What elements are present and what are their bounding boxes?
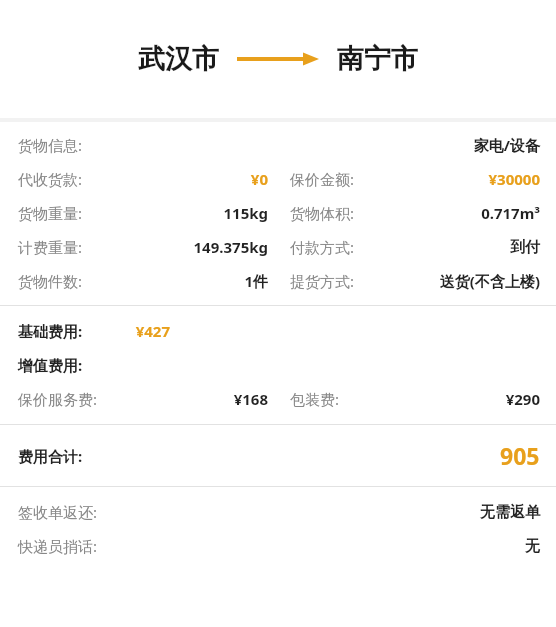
button[interactable]: 货物重量: [0,196,556,230]
staticText: 增值费用: [18,355,83,375]
button[interactable]: 武汉市 [0,0,556,118]
staticText: 送货(不含上楼) [439,271,540,291]
staticText: 905 [500,440,540,471]
staticText: 代收货款: [18,169,83,189]
button[interactable]: 基础费用: [0,314,556,348]
staticText: 到付 [510,238,540,257]
staticText: 基础费用: [18,321,83,341]
staticText: 货物信息: [18,135,83,155]
button[interactable]: 货物信息: [0,128,556,162]
staticText: 保价服务费: [18,389,98,409]
staticText: 无需返单 [480,503,540,522]
button[interactable]: 费用合计: [0,425,556,486]
staticText: 保价金额: [290,169,355,189]
staticText: 武汉市 [138,42,219,76]
staticText: ¥168 [233,389,268,409]
staticText: 货物重量: [18,203,83,223]
staticText: 快递员捎话: [18,536,98,556]
button[interactable]: 增值费用: [0,348,556,382]
other: 到 [237,49,319,69]
staticText: 1件 [244,271,268,291]
staticText: 提货方式: [290,271,355,291]
staticText: 计费重量: [18,237,83,257]
staticText: 南宁市 [337,42,418,76]
staticText: 无 [525,537,540,556]
staticText: 费用合计: [18,446,83,466]
button[interactable]: 货物件数: [0,264,556,298]
staticText: ¥0 [250,169,268,189]
staticText: ¥290 [505,389,540,409]
staticText: 115kg [223,203,268,223]
staticText: 149.375kg [193,237,268,257]
staticText: 货物体积: [290,203,355,223]
button[interactable]: 代收货款: [0,162,556,196]
staticText: ¥427 [135,321,170,341]
staticText: 签收单返还: [18,502,98,522]
button[interactable]: 快递员捎话: [0,529,556,563]
staticText: 货物件数: [18,271,83,291]
button[interactable]: 保价服务费: [0,382,556,416]
staticText: 包装费: [290,389,340,409]
button[interactable]: 签收单返还: [0,495,556,529]
staticText: ¥30000 [488,169,540,189]
staticText: 付款方式: [290,237,355,257]
staticText: 0.717m³ [481,203,540,223]
button[interactable]: 计费重量: [0,230,556,264]
staticText: 家电/设备 [473,135,540,155]
